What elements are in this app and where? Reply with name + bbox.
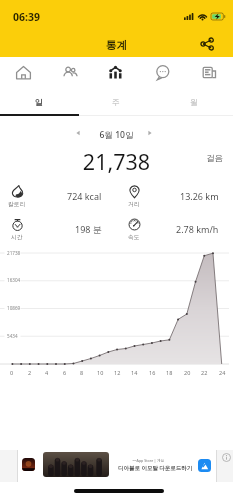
button[interactable]: 주 <box>77 88 155 116</box>
staticText: App Store | 게임 <box>132 458 165 463</box>
button[interactable]: Home <box>0 57 46 88</box>
staticText: 14 <box>131 369 138 376</box>
button[interactable]: 칼로리 <box>0 183 116 213</box>
staticText: 12 <box>114 369 121 376</box>
staticText: 걸음 <box>206 153 224 164</box>
button[interactable]: Chat <box>139 57 186 88</box>
button[interactable]: 일 <box>0 88 77 116</box>
button[interactable]: 시간 <box>0 216 116 246</box>
button[interactable]: Share <box>196 33 218 55</box>
staticText: 8 <box>80 369 84 376</box>
staticText: 주 <box>112 97 120 107</box>
staticText: 4 <box>45 369 49 376</box>
staticText: 22 <box>201 369 208 376</box>
button[interactable]: Statistics <box>92 57 139 88</box>
staticText: 2 <box>28 369 32 376</box>
staticText: 일 <box>35 97 43 107</box>
staticText: 6 <box>63 369 67 376</box>
staticText: 198 분 <box>75 223 102 235</box>
staticText: 21,738 <box>0 147 233 176</box>
staticText: 10 <box>97 369 104 376</box>
button[interactable]: 월 <box>155 88 233 116</box>
staticText: 724 kcal <box>67 190 102 202</box>
button[interactable]: 거리 <box>117 183 233 213</box>
staticText: 18 <box>166 369 173 376</box>
staticText: 24 <box>219 369 226 376</box>
staticText: 13.26 km <box>180 190 219 202</box>
staticText: 0 <box>10 369 14 376</box>
button[interactable] <box>17 450 216 482</box>
staticText: 6월 10일 <box>0 129 233 141</box>
button[interactable]: News <box>186 57 233 88</box>
staticText: 10869 <box>7 305 21 311</box>
staticText: 2.78 km/h <box>176 223 219 235</box>
staticText: 5434 <box>7 333 18 339</box>
staticText: 16 <box>149 369 156 376</box>
staticText: 칼로리 <box>8 200 26 207</box>
button[interactable]: Friends <box>46 57 92 88</box>
staticText: 시간 <box>11 233 23 240</box>
staticText: 21738 <box>7 250 21 256</box>
button[interactable]: Previous day <box>69 124 87 142</box>
staticText: 16304 <box>7 277 21 283</box>
staticText: 디아블로 이모탈 다운로드하기 <box>118 464 193 472</box>
staticText: 06:39 <box>13 10 40 24</box>
staticText: 속도 <box>128 233 140 240</box>
staticText: 통계 <box>0 39 233 53</box>
staticText: 월 <box>190 97 198 107</box>
button[interactable]: 속도 <box>117 216 233 246</box>
button[interactable]: Next day <box>141 124 159 142</box>
staticText: 20 <box>184 369 191 376</box>
staticText: 거리 <box>128 200 140 207</box>
